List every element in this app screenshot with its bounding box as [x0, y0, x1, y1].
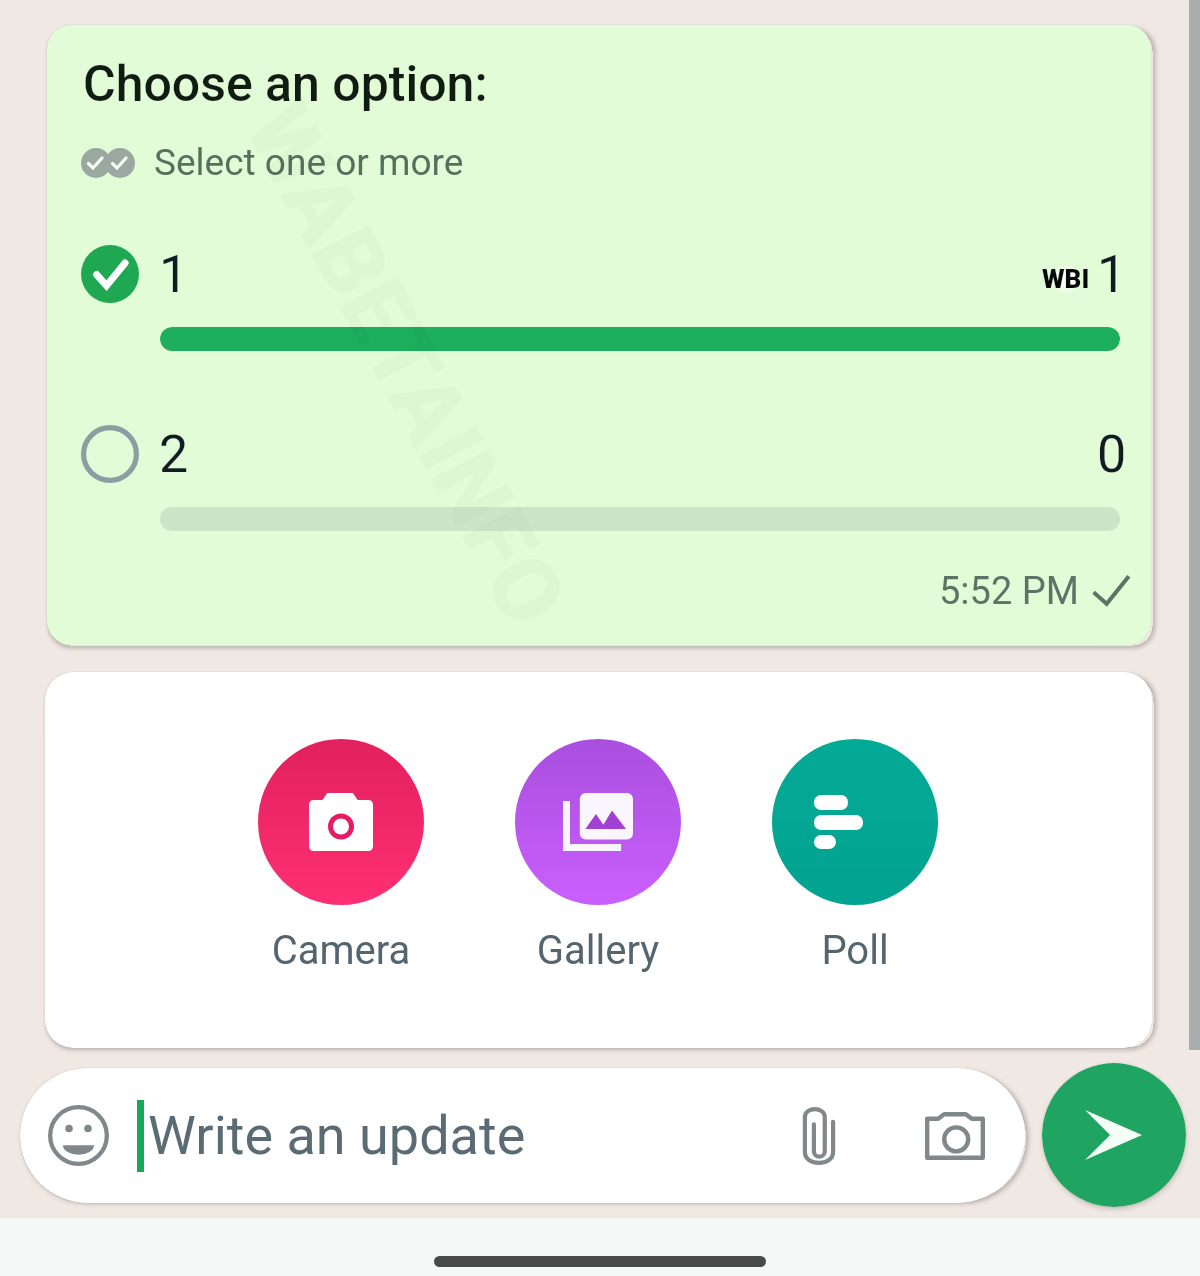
staticText: Select one or more	[154, 141, 464, 184]
staticText: WABETAINFO	[223, 86, 588, 644]
button[interactable]: Camera	[915, 1096, 995, 1176]
staticText: Poll	[755, 927, 955, 974]
button[interactable]: Write an update	[20, 1068, 1025, 1203]
staticText: 1	[159, 244, 189, 304]
staticText: Choose an option:	[83, 55, 488, 114]
staticText: 5:52 PM	[939, 569, 1079, 614]
button[interactable]: Poll	[755, 739, 955, 974]
staticText: 0	[1097, 424, 1127, 484]
button[interactable]: Gallery	[498, 739, 698, 974]
staticText: Write an update	[148, 1104, 526, 1167]
staticText: 1	[1097, 244, 1127, 304]
button[interactable]: 2	[47, 422, 1151, 542]
button[interactable]: Camera	[241, 739, 441, 974]
button[interactable]: Send	[1042, 1063, 1186, 1207]
button[interactable]: 1	[47, 242, 1151, 362]
staticText: Gallery	[498, 927, 698, 974]
button[interactable]: Attach	[779, 1096, 859, 1176]
staticText: Camera	[241, 927, 441, 974]
staticText: 2	[159, 424, 189, 484]
staticText: WBI	[1042, 264, 1090, 294]
